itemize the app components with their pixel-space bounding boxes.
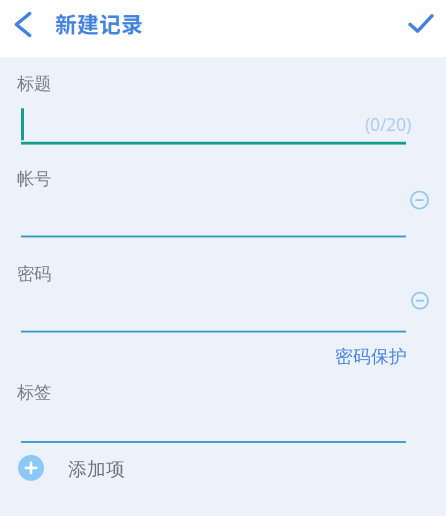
button[interactable]: (0/20) [17,108,411,140]
staticText: 密码保护 [335,345,407,368]
staticText: 帐号 [17,168,51,190]
button[interactable]: 清除密码 [407,288,433,314]
staticText: 密码 [17,263,51,285]
staticText: 标签 [17,382,51,403]
button[interactable]: 密码保护 [17,345,407,368]
button[interactable]: 添加项 [17,455,403,481]
button[interactable]: 清除帐号 [406,187,433,214]
staticText: 添加项 [68,458,125,481]
button[interactable]: 返回 [5,2,41,54]
staticText: (0/20) [365,113,411,136]
staticText: 新建记录 [55,7,143,39]
staticText: 标题 [17,73,51,94]
button[interactable]: 保存 [401,1,441,55]
